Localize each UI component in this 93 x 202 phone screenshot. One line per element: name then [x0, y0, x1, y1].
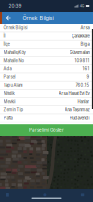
staticText: 161	[82, 66, 89, 71]
staticText: 20:39	[8, 3, 21, 9]
staticText: Hüdavendi	[69, 115, 89, 120]
staticText: Çanakkale	[71, 33, 89, 38]
staticText: 4G	[80, 4, 85, 8]
staticText: Güvemalan	[69, 50, 89, 55]
staticText: 9	[86, 74, 89, 79]
staticText: Mahalle No	[3, 58, 23, 63]
staticText: Ana Taşınmaz	[64, 107, 89, 112]
staticText: Ada	[3, 66, 11, 71]
button[interactable]: Recents	[6, 193, 9, 197]
staticText: Mahalle/Köy	[3, 50, 25, 55]
staticText: 109811	[74, 58, 89, 63]
staticText: Arsa Hasat Evi Ev	[58, 91, 89, 96]
button[interactable]: Layers	[81, 193, 84, 196]
button[interactable]: Home	[43, 193, 46, 196]
staticText: Arsa	[80, 25, 89, 30]
staticText: Tapu Alanı	[3, 83, 22, 88]
staticText: Mevkii	[3, 99, 15, 104]
staticText: Pafta	[3, 115, 12, 120]
staticText: Nitelik	[3, 91, 14, 96]
staticText: İlçe	[3, 42, 9, 47]
button[interactable]: Back	[2, 12, 14, 24]
staticText: Parsel	[3, 74, 15, 79]
staticText: Biga	[80, 42, 89, 47]
staticText: Örnek Bilgisi	[22, 15, 53, 21]
staticText: Örnek Bilgisi	[3, 25, 27, 30]
staticText: İl	[3, 33, 5, 38]
staticText: 760.15	[75, 83, 89, 88]
staticText: Zemin Tip	[3, 107, 23, 112]
staticText: Hanlar	[77, 99, 89, 104]
button[interactable]: Parselimi Göster	[0, 124, 93, 136]
staticText: Parselimi Göster	[29, 127, 64, 133]
